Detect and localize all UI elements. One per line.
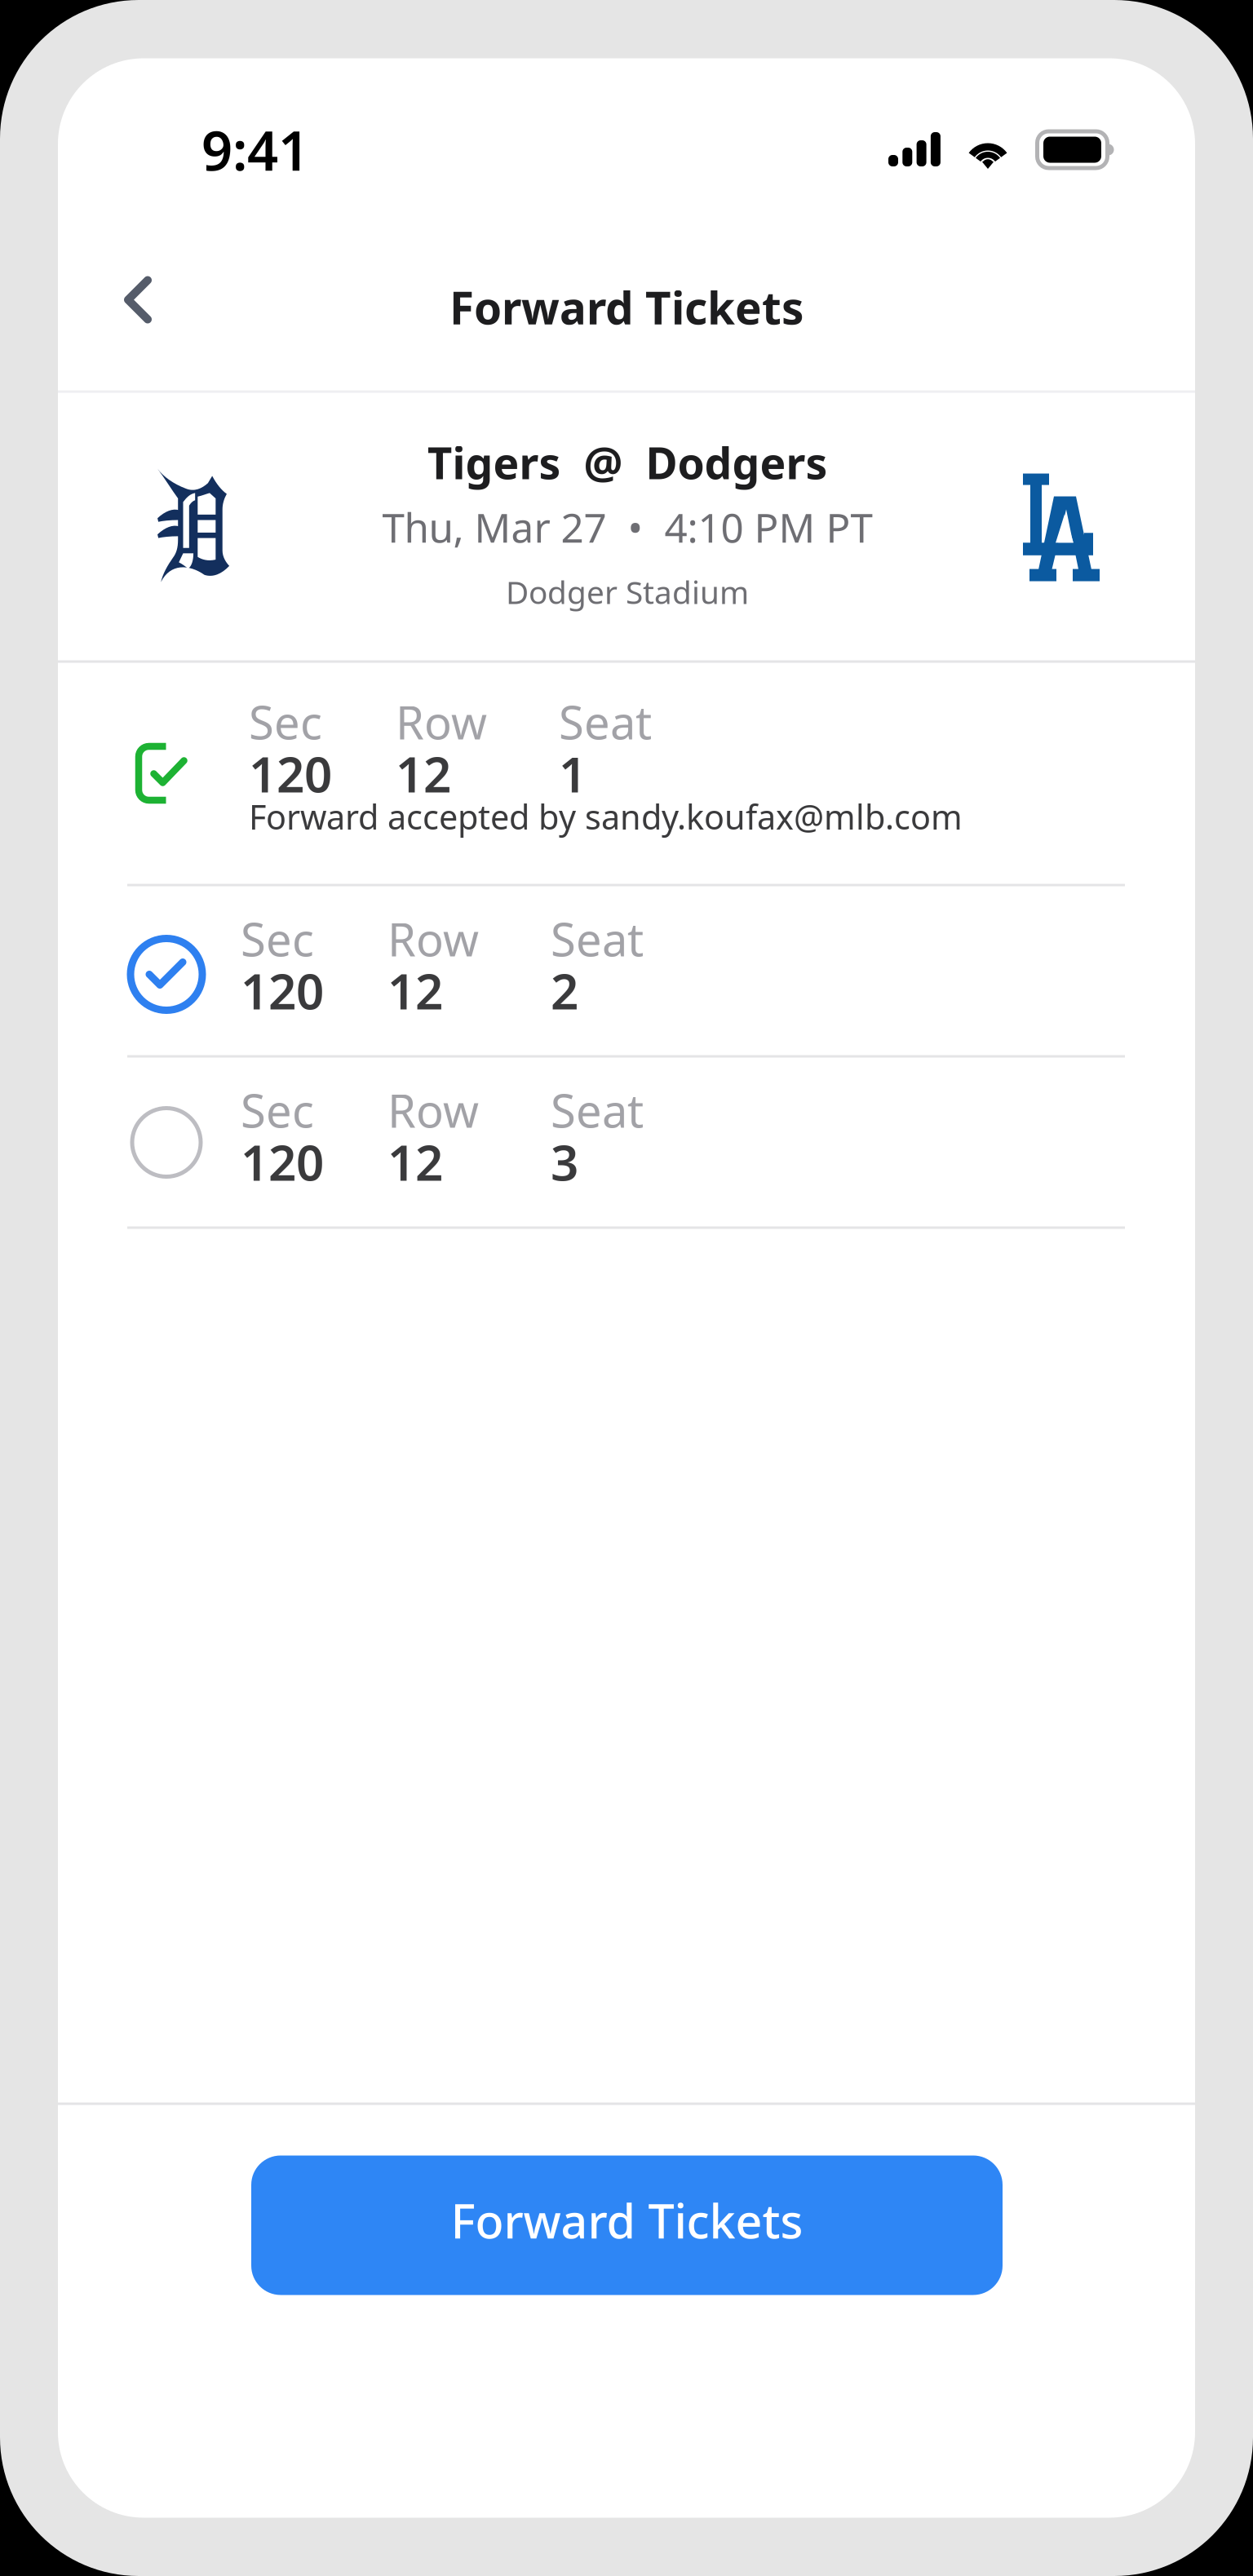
staticText: Forward accepted by sandy.koufax@mlb.com xyxy=(249,794,963,839)
staticText: 9:41 xyxy=(201,114,309,186)
staticText: 12 xyxy=(387,958,443,1023)
button[interactable]: Sec xyxy=(58,663,1195,884)
staticText: Seat xyxy=(559,691,652,752)
staticText: 120 xyxy=(241,958,324,1023)
button[interactable]: Back xyxy=(95,257,180,342)
staticText: Forward Tickets xyxy=(449,278,804,337)
staticText: Forward Tickets xyxy=(451,2189,803,2251)
staticText: Row xyxy=(396,691,487,752)
staticText: Row xyxy=(387,908,479,969)
button[interactable]: Forward Tickets xyxy=(251,2156,1003,2295)
staticText: Thu, Mar 27 • 4:10 PM PT xyxy=(382,500,872,554)
staticText: Seat xyxy=(551,908,644,969)
staticText: Dodger Stadium xyxy=(506,571,749,613)
staticText: 2 xyxy=(551,958,578,1023)
staticText: 12 xyxy=(387,1129,443,1194)
staticText: 120 xyxy=(249,741,332,806)
button[interactable]: Sec xyxy=(58,886,1195,1055)
staticText: 3 xyxy=(551,1129,578,1194)
staticText: Tigers @ Dodgers xyxy=(427,434,828,491)
staticText: Sec xyxy=(241,908,314,969)
staticText: Sec xyxy=(241,1080,314,1140)
staticText: 120 xyxy=(241,1129,324,1194)
staticText: 12 xyxy=(396,741,451,806)
button[interactable]: Sec xyxy=(58,1058,1195,1226)
staticText: 1 xyxy=(559,741,587,806)
staticText: Seat xyxy=(551,1080,644,1140)
staticText: Sec xyxy=(249,691,322,752)
staticText: Row xyxy=(387,1080,479,1140)
